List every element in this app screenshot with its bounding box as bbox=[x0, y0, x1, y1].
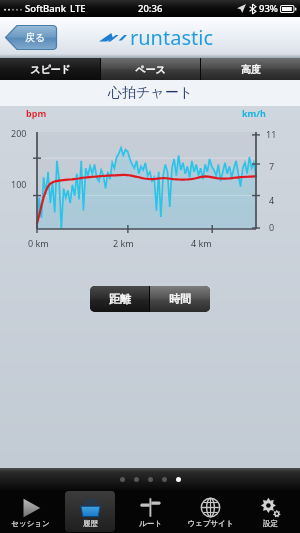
staticText: 93% bbox=[259, 2, 278, 15]
button[interactable]: ルート bbox=[120, 490, 180, 533]
staticText: 200 bbox=[11, 127, 27, 139]
staticText: ウェブサイト bbox=[187, 519, 234, 528]
button[interactable]: 高度 bbox=[201, 58, 300, 80]
button[interactable]: スピード bbox=[0, 58, 100, 80]
staticText: runtastic bbox=[130, 24, 213, 51]
staticText: 100 bbox=[11, 178, 27, 190]
button[interactable]: 履歴 bbox=[60, 490, 120, 533]
other: ルート bbox=[140, 497, 161, 518]
staticText: 心拍チャート bbox=[108, 84, 193, 102]
staticText: 高度 bbox=[241, 63, 261, 76]
staticText: セッション bbox=[11, 519, 50, 528]
staticText: 4 km bbox=[191, 237, 212, 249]
staticText: LTE bbox=[70, 2, 86, 15]
staticText: ペース bbox=[135, 63, 166, 76]
staticText: 4 bbox=[269, 194, 275, 206]
staticText: bpm bbox=[26, 107, 47, 119]
staticText: 7 bbox=[269, 160, 275, 172]
button[interactable]: セッション bbox=[0, 490, 60, 533]
button[interactable]: ペース bbox=[101, 58, 200, 80]
staticText: 2 km bbox=[113, 237, 134, 249]
staticText: 11 bbox=[266, 128, 277, 140]
other: ウェブサイト bbox=[200, 497, 221, 518]
button[interactable]: 設定 bbox=[240, 490, 300, 533]
staticText: 履歴 bbox=[83, 519, 98, 528]
staticText: 0 km bbox=[28, 237, 49, 249]
staticText: 距離 bbox=[109, 292, 131, 306]
staticText: 戻る bbox=[25, 31, 46, 44]
other: 履歴 bbox=[80, 497, 101, 518]
staticText: 0 bbox=[269, 221, 275, 233]
staticText: km/h bbox=[242, 107, 266, 119]
staticText: SoftBank bbox=[25, 2, 66, 15]
button[interactable]: 戻る bbox=[5, 25, 57, 50]
other: 設定 bbox=[260, 497, 281, 518]
button[interactable]: 距離 bbox=[90, 286, 149, 312]
button[interactable]: 時間 bbox=[150, 286, 210, 312]
staticText: 20:36 bbox=[138, 2, 163, 15]
staticText: 時間 bbox=[169, 292, 191, 306]
staticText: ルート bbox=[139, 519, 162, 528]
staticText: スピード bbox=[30, 63, 71, 76]
other: セッション bbox=[20, 497, 42, 519]
button[interactable]: ウェブサイト bbox=[180, 490, 240, 533]
staticText: 設定 bbox=[263, 519, 278, 528]
